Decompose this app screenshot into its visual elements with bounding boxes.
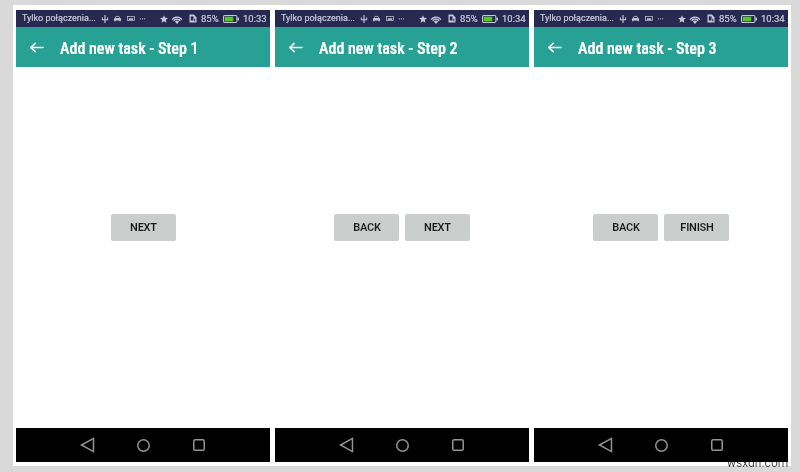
staticText: Tylko połączenia...: [22, 13, 96, 24]
staticText: 10:33: [243, 13, 267, 24]
button[interactable]: FINISH: [664, 214, 729, 241]
button[interactable]: NEXT: [111, 214, 176, 241]
staticText: FINISH: [680, 221, 714, 234]
staticText: 10:34: [761, 13, 785, 24]
button[interactable]: Back: [335, 434, 357, 456]
staticText: Tylko połączenia...: [281, 13, 355, 24]
staticText: wsxdn.com: [727, 456, 789, 470]
button[interactable]: Home: [391, 434, 413, 456]
button[interactable]: NEXT: [405, 214, 470, 241]
staticText: BACK: [353, 221, 381, 234]
button[interactable]: Recent apps: [447, 434, 469, 456]
button[interactable]: Recent apps: [188, 434, 210, 456]
button[interactable]: Back: [594, 434, 616, 456]
staticText: Add new task - Step 1: [60, 39, 199, 58]
button[interactable]: Back: [76, 434, 98, 456]
button[interactable]: Navigate up: [534, 27, 574, 67]
button[interactable]: Home: [132, 434, 154, 456]
staticText: 10:34: [502, 13, 526, 24]
button[interactable]: Navigate up: [275, 27, 315, 67]
button[interactable]: Recent apps: [706, 434, 728, 456]
staticText: 85%: [201, 13, 219, 24]
staticText: Tylko połączenia...: [540, 13, 614, 24]
staticText: 85%: [719, 13, 737, 24]
staticText: Add new task - Step 3: [578, 39, 717, 58]
staticText: NEXT: [130, 221, 157, 234]
button[interactable]: BACK: [593, 214, 658, 241]
staticText: 85%: [460, 13, 478, 24]
button[interactable]: Navigate up: [16, 27, 56, 67]
staticText: NEXT: [424, 221, 451, 234]
staticText: Add new task - Step 2: [319, 39, 458, 58]
button[interactable]: Home: [650, 434, 672, 456]
button[interactable]: BACK: [334, 214, 399, 241]
staticText: BACK: [612, 221, 640, 234]
